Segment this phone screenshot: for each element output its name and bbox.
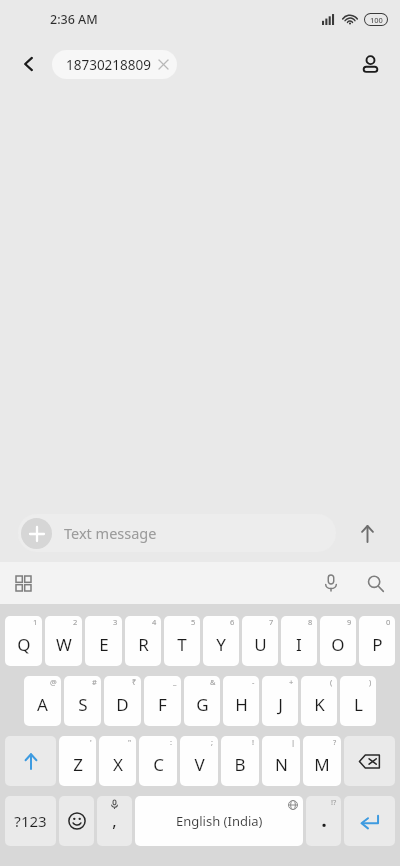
button[interactable]: Text message	[18, 514, 336, 552]
button[interactable]: Emoji	[59, 796, 94, 846]
staticText: 3	[113, 617, 118, 627]
staticText: 8	[308, 617, 313, 627]
staticText: K	[314, 693, 325, 716]
staticText: &	[210, 677, 216, 687]
staticText: 2	[73, 617, 78, 627]
button[interactable]: Search	[358, 566, 392, 600]
staticText: 9	[347, 617, 352, 627]
staticText: |	[291, 737, 296, 747]
staticText: Y	[216, 633, 226, 656]
button[interactable]: !?	[306, 796, 341, 846]
button[interactable]: 3	[85, 616, 122, 666]
staticText: "	[128, 737, 132, 747]
staticText: X	[113, 753, 123, 776]
button[interactable]: ?123	[5, 796, 56, 846]
button[interactable]: "	[99, 736, 136, 786]
staticText: :	[170, 737, 173, 747]
button[interactable]: 4	[125, 616, 161, 666]
staticText: N	[275, 753, 288, 776]
button[interactable]: Space	[135, 796, 303, 846]
staticText: Text message	[64, 523, 157, 543]
staticText: 100	[370, 15, 383, 25]
staticText: +	[289, 677, 294, 687]
staticText: English (India)	[176, 812, 263, 830]
button[interactable]: ;	[180, 736, 218, 786]
button[interactable]: ?	[303, 736, 341, 786]
staticText: T	[177, 633, 187, 656]
staticText: W	[56, 633, 72, 656]
staticText: C	[153, 753, 164, 776]
button[interactable]: Shift	[5, 736, 56, 786]
button[interactable]: #	[64, 676, 101, 726]
staticText: '	[90, 737, 92, 747]
staticText: E	[99, 633, 109, 656]
button[interactable]: Enter	[344, 796, 395, 846]
button[interactable]: 18730218809	[52, 50, 177, 79]
staticText: Q	[17, 633, 31, 656]
staticText: M	[314, 753, 330, 776]
button[interactable]: 0	[359, 616, 395, 666]
staticText: #	[92, 677, 97, 687]
button[interactable]: 8	[281, 616, 317, 666]
button[interactable]: Send	[348, 514, 386, 552]
button[interactable]: 9	[320, 616, 356, 666]
staticText: 6	[230, 617, 235, 627]
staticText: 5	[191, 617, 196, 627]
staticText: G	[196, 693, 209, 716]
button[interactable]: 1	[5, 616, 42, 666]
button[interactable]: |	[262, 736, 300, 786]
button[interactable]: 6	[203, 616, 239, 666]
staticText: 2:36 AM	[50, 11, 98, 28]
staticText: 18730218809	[66, 56, 151, 74]
button[interactable]: Contact details	[352, 46, 388, 82]
staticText: ?	[333, 737, 337, 747]
button[interactable]: +	[262, 676, 298, 726]
button[interactable]: (	[301, 676, 337, 726]
staticText: B	[234, 753, 246, 776]
staticText: 0	[386, 617, 391, 627]
staticText: ?123	[14, 811, 47, 831]
button[interactable]: :	[139, 736, 177, 786]
staticText: @	[50, 677, 57, 687]
staticText: 4	[152, 617, 157, 627]
staticText: ,	[112, 810, 117, 832]
staticText: D	[116, 693, 129, 716]
button[interactable]: 7	[242, 616, 278, 666]
button[interactable]: Backspace	[344, 736, 395, 786]
staticText: I	[296, 633, 302, 656]
staticText: (	[330, 677, 333, 687]
staticText: _	[173, 677, 177, 687]
staticText: O	[331, 633, 345, 656]
button[interactable]: )	[340, 676, 376, 726]
button[interactable]: 2	[45, 616, 82, 666]
staticText: Z	[73, 753, 83, 776]
button[interactable]: ₹	[104, 676, 141, 726]
button[interactable]: Back	[12, 47, 46, 81]
staticText: ₹	[132, 677, 137, 687]
staticText: 7	[269, 617, 274, 627]
staticText: 1	[33, 617, 38, 627]
staticText: !?	[331, 797, 337, 807]
button[interactable]: Voice input	[314, 566, 348, 600]
staticText: R	[138, 633, 149, 656]
button[interactable]: @	[24, 676, 61, 726]
staticText: H	[235, 693, 248, 716]
staticText: U	[254, 633, 267, 656]
staticText: S	[78, 693, 88, 716]
button[interactable]: 5	[164, 616, 200, 666]
staticText: J	[278, 693, 283, 716]
staticText: L	[354, 693, 363, 716]
staticText: ·	[321, 811, 327, 838]
staticText: -	[252, 677, 255, 687]
staticText: V	[194, 753, 205, 776]
button[interactable]: !	[221, 736, 259, 786]
button[interactable]: ,	[97, 796, 132, 846]
button[interactable]: Apps	[6, 566, 40, 600]
button[interactable]: _	[144, 676, 181, 726]
button[interactable]: -	[223, 676, 259, 726]
staticText: !	[252, 737, 255, 747]
staticText: ;	[211, 737, 214, 747]
button[interactable]: &	[184, 676, 220, 726]
staticText: )	[369, 677, 372, 687]
button[interactable]: '	[59, 736, 96, 786]
